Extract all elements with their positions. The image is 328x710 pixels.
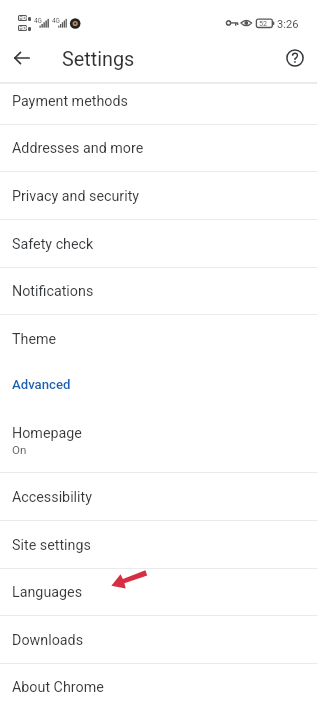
staticText: Settings: [62, 48, 135, 71]
button[interactable]: Safety check: [0, 220, 317, 268]
staticText: Notifications: [12, 283, 94, 300]
staticText: HD: [19, 15, 27, 21]
staticText: Addresses and more: [12, 140, 144, 157]
button[interactable]: Navigate up: [0, 36, 44, 80]
staticText: Theme: [12, 331, 57, 348]
button[interactable]: About Chrome: [0, 663, 317, 710]
staticText: Privacy and security: [12, 188, 140, 205]
button[interactable]: Notifications: [0, 267, 317, 315]
staticText: 52: [259, 19, 268, 27]
staticText: 4G: [52, 17, 60, 25]
button[interactable]: Accessibility: [0, 473, 317, 521]
staticText: HD: [19, 25, 27, 31]
staticText: 4G: [34, 17, 42, 25]
staticText: Languages: [12, 584, 83, 601]
button[interactable]: Homepage: [0, 408, 317, 473]
staticText: Payment methods: [12, 93, 128, 110]
button[interactable]: Site settings: [0, 521, 317, 569]
button[interactable]: Theme: [0, 315, 317, 363]
button[interactable]: Addresses and more: [0, 124, 317, 172]
staticText: About Chrome: [12, 679, 104, 696]
staticText: Downloads: [12, 632, 84, 649]
button[interactable]: Payment methods: [0, 77, 317, 125]
staticText: Accessibility: [12, 489, 93, 506]
staticText: Homepage: [12, 425, 82, 442]
button[interactable]: Help and feedback: [273, 36, 317, 80]
staticText: On: [12, 443, 27, 457]
staticText: Advanced: [12, 377, 71, 392]
button[interactable]: Privacy and security: [0, 172, 317, 220]
staticText: Site settings: [12, 537, 91, 554]
staticText: 3:26: [277, 18, 299, 31]
button[interactable]: Downloads: [0, 616, 317, 664]
staticText: Safety check: [12, 236, 94, 253]
button[interactable]: Languages: [0, 568, 317, 616]
